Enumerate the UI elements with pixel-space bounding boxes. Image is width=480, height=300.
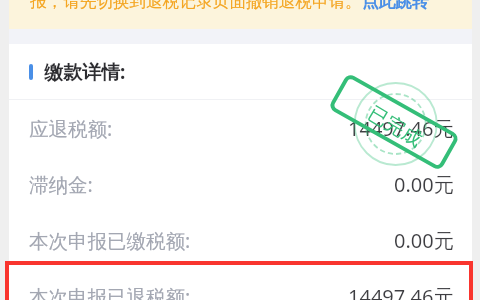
- button[interactable]: 应退税额:: [9, 100, 472, 156]
- staticText: 已完成: [364, 101, 427, 152]
- staticText: 滞纳金:: [29, 171, 93, 198]
- staticText: 本次申报已退税额:: [29, 283, 191, 300]
- staticText: 0.00元: [394, 171, 454, 198]
- staticText: 本次申报已缴税额:: [29, 227, 191, 254]
- button[interactable]: 滞纳金:: [9, 156, 472, 212]
- staticText: 0.00元: [394, 227, 454, 254]
- staticText: 应退税额:: [29, 115, 113, 142]
- button[interactable]: 本次申报已缴税额:: [9, 212, 472, 268]
- button[interactable]: 报，请先切换到退税记录页面撤销退税申请。: [30, 0, 480, 12]
- staticText: 点此跳转: [362, 0, 429, 12]
- staticText: 缴款详情:: [44, 59, 126, 85]
- staticText: 14497.46元: [348, 115, 454, 142]
- staticText: 报，请先切换到退税记录页面撤销退税申请。: [30, 0, 362, 12]
- button[interactable]: 本次申报已退税额:: [9, 268, 472, 300]
- staticText: 14497.46元: [348, 283, 454, 300]
